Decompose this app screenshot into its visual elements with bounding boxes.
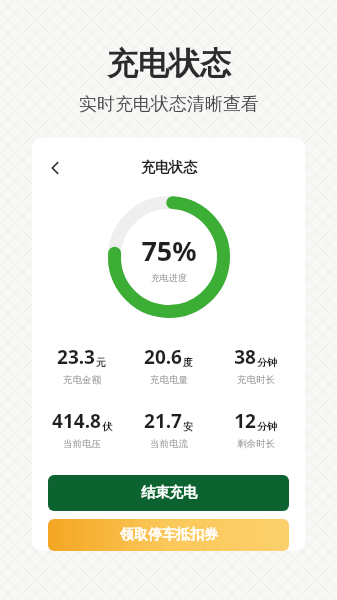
staticText: 414.8 — [52, 408, 101, 434]
staticText: 当前电流 — [150, 438, 188, 450]
staticText: 当前电压 — [63, 438, 101, 450]
staticText: 安 — [183, 420, 193, 433]
staticText: 分钟 — [257, 356, 277, 369]
staticText: 分钟 — [257, 420, 277, 433]
button[interactable]: Back — [42, 154, 70, 182]
staticText: 度 — [183, 356, 193, 369]
staticText: 领取停车抵扣券 — [120, 526, 218, 544]
staticText: 实时充电状态清晰查看 — [79, 93, 259, 116]
staticText: 23.3 — [57, 344, 95, 370]
staticText: 38 — [234, 344, 256, 370]
staticText: 元 — [96, 356, 106, 369]
staticText: 充电电量 — [150, 374, 188, 386]
staticText: 伏 — [102, 420, 112, 433]
button[interactable]: 领取停车抵扣券 — [48, 519, 289, 551]
staticText: 结束充电 — [141, 484, 197, 502]
staticText: 充电时长 — [237, 374, 275, 386]
staticText: 剩余时长 — [237, 438, 275, 450]
staticText: 20.6 — [144, 344, 182, 370]
button[interactable]: 结束充电 — [48, 475, 289, 511]
staticText: 75% — [141, 232, 197, 269]
staticText: 21.7 — [144, 408, 182, 434]
staticText: 充电金额 — [63, 374, 101, 386]
staticText: 充电状态 — [107, 44, 231, 83]
staticText: 12 — [234, 408, 256, 434]
staticText: 充电状态 — [141, 159, 197, 177]
staticText: 充电进度 — [151, 272, 187, 283]
